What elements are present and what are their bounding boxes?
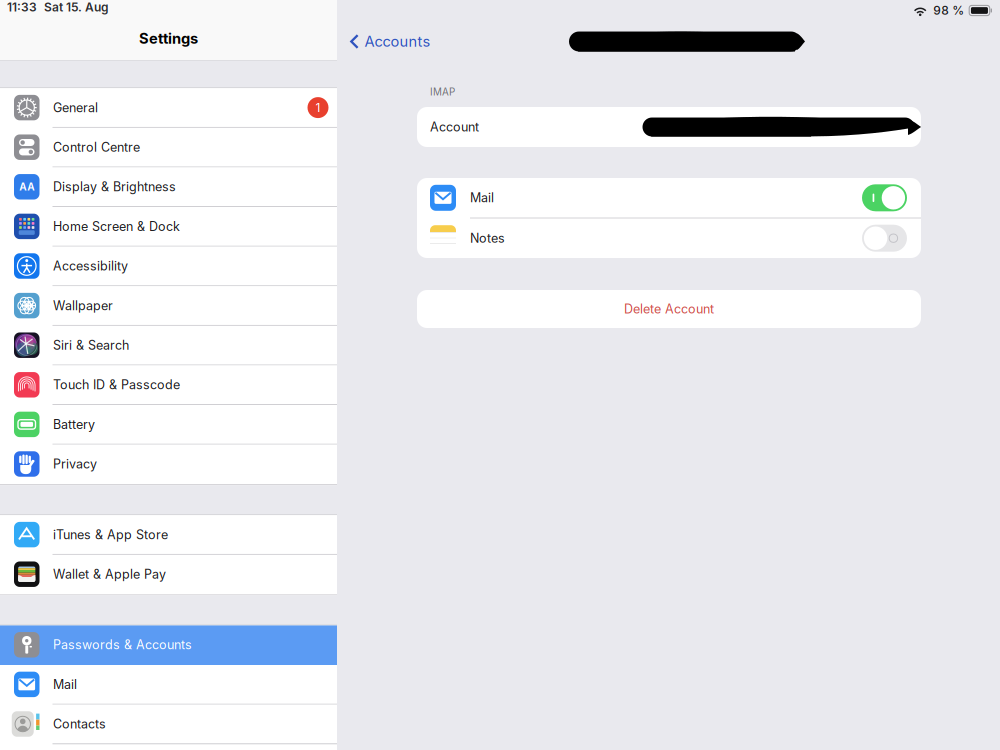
staticText: Notes <box>470 231 505 246</box>
button[interactable]: Accounts <box>337 24 438 58</box>
button[interactable]: Control Centre <box>0 128 337 167</box>
staticText: Passwords & Accounts <box>53 637 192 652</box>
button[interactable]: Passwords & Accounts <box>0 625 337 665</box>
button[interactable]: Account <box>337 107 1000 147</box>
staticText: Mail <box>53 677 77 692</box>
button[interactable]: Mail <box>0 665 337 705</box>
button[interactable]: Accessibility <box>0 247 337 286</box>
staticText: 11:33 <box>7 0 37 14</box>
button[interactable]: Wallet & Apple Pay <box>0 555 337 594</box>
staticText: Display & Brightness <box>53 179 176 194</box>
staticText: Siri & Search <box>53 338 129 353</box>
button[interactable]: Mail <box>417 178 921 218</box>
staticText: Accounts <box>364 33 430 50</box>
button[interactable]: iTunes & App Store <box>0 515 337 555</box>
button[interactable]: Battery <box>0 405 337 445</box>
staticText: Wallpaper <box>53 298 113 313</box>
staticText: Delete Account <box>624 301 714 317</box>
staticText: Battery <box>53 417 95 432</box>
staticText: Control Centre <box>53 140 140 155</box>
staticText: Sat 15. Aug <box>44 0 109 14</box>
button[interactable]: Wallpaper <box>0 286 337 326</box>
staticText: 98 % <box>933 3 964 18</box>
staticText: AA <box>19 181 34 193</box>
staticText: Contacts <box>53 716 106 732</box>
staticText: 1 <box>315 100 320 115</box>
staticText: Privacy <box>53 456 97 472</box>
staticText: Touch ID & Passcode <box>53 377 180 392</box>
staticText: iTunes & App Store <box>53 527 168 542</box>
button[interactable]: General <box>0 88 337 128</box>
staticText: Wallet & Apple Pay <box>53 567 166 582</box>
button[interactable]: Home Screen & Dock <box>0 207 337 247</box>
staticText: Home Screen & Dock <box>53 219 180 234</box>
button[interactable]: Privacy <box>0 445 337 484</box>
button[interactable]: Delete Account <box>337 290 1000 328</box>
button[interactable]: Contacts <box>0 705 337 744</box>
button[interactable]: Touch ID & Passcode <box>0 365 337 405</box>
button[interactable]: Siri & Search <box>0 326 337 365</box>
button[interactable]: AA <box>0 167 337 207</box>
staticText: Accessibility <box>53 258 128 274</box>
staticText: IMAP <box>430 86 455 98</box>
staticText: Account <box>430 119 479 135</box>
button[interactable]: Notes <box>417 218 921 258</box>
staticText: Settings <box>139 29 198 47</box>
staticText: Mail <box>470 190 494 205</box>
staticText: General <box>53 100 98 115</box>
